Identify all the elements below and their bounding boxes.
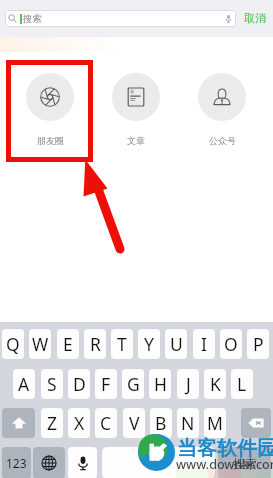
- staticText: B: [155, 411, 167, 435]
- button[interactable]: Space: [102, 447, 215, 478]
- staticText: A: [18, 372, 30, 396]
- staticText: V: [129, 411, 140, 435]
- button[interactable]: 取消: [240, 9, 270, 27]
- staticText: 公众号: [209, 135, 236, 146]
- button[interactable]: X: [68, 408, 90, 438]
- button[interactable]: V: [123, 408, 145, 438]
- staticText: W: [32, 332, 49, 356]
- staticText: H: [154, 372, 167, 396]
- button[interactable]: Switch language: [33, 447, 65, 478]
- staticText: 搜索: [233, 456, 257, 471]
- button[interactable]: 朋友圈: [26, 73, 74, 146]
- button[interactable]: O: [220, 329, 242, 359]
- button[interactable]: Delete: [241, 408, 271, 438]
- staticText: C: [100, 411, 112, 435]
- button[interactable]: 搜索: [218, 447, 271, 478]
- staticText: www.downkr.com: [176, 456, 273, 473]
- button[interactable]: 123: [2, 447, 31, 478]
- staticText: S: [47, 372, 57, 396]
- staticText: 123: [6, 455, 27, 471]
- button[interactable]: A: [13, 369, 35, 399]
- button[interactable]: R: [84, 329, 106, 359]
- button[interactable]: U: [165, 329, 187, 359]
- button[interactable]: 文章: [112, 73, 160, 146]
- staticText: J: [186, 372, 191, 396]
- staticText: P: [253, 332, 264, 356]
- button[interactable]: N: [177, 408, 199, 438]
- staticText: M: [207, 411, 223, 435]
- button[interactable]: L: [231, 369, 253, 399]
- button[interactable]: Y: [138, 329, 160, 359]
- staticText: I: [201, 332, 207, 356]
- button[interactable]: K: [204, 369, 226, 399]
- button[interactable]: H: [149, 369, 171, 399]
- staticText: 朋友圈: [37, 135, 64, 146]
- staticText: R: [90, 332, 101, 356]
- staticText: T: [117, 332, 127, 356]
- staticText: 搜索: [23, 13, 42, 25]
- button[interactable]: F: [95, 369, 117, 399]
- staticText: E: [63, 332, 73, 356]
- other: Voice search: [224, 14, 233, 23]
- button[interactable]: W: [29, 329, 51, 359]
- staticText: 取消: [244, 11, 266, 25]
- staticText: K: [210, 372, 221, 396]
- staticText: 文章: [127, 135, 145, 146]
- button[interactable]: M: [204, 408, 226, 438]
- staticText: L: [237, 372, 247, 396]
- staticText: Q: [6, 332, 20, 356]
- button[interactable]: Shift: [2, 408, 35, 438]
- button[interactable]: D: [68, 369, 90, 399]
- staticText: Y: [144, 332, 154, 356]
- button[interactable]: Z: [41, 408, 63, 438]
- button[interactable]: Voice input: [68, 447, 97, 478]
- staticText: G: [127, 372, 140, 396]
- staticText: X: [74, 411, 85, 435]
- staticText: D: [73, 372, 86, 396]
- button[interactable]: 搜索: [5, 10, 236, 27]
- staticText: U: [170, 332, 183, 356]
- staticText: Z: [47, 411, 58, 435]
- button[interactable]: J: [177, 369, 199, 399]
- staticText: 当客软件园: [177, 436, 273, 461]
- button[interactable]: B: [150, 408, 172, 438]
- button[interactable]: C: [95, 408, 117, 438]
- button[interactable]: 公众号: [198, 73, 246, 146]
- button[interactable]: Q: [2, 329, 24, 359]
- button[interactable]: E: [57, 329, 79, 359]
- button[interactable]: T: [111, 329, 133, 359]
- staticText: N: [181, 411, 195, 435]
- staticText: F: [101, 372, 111, 396]
- staticText: O: [224, 332, 238, 356]
- button[interactable]: P: [247, 329, 269, 359]
- button[interactable]: S: [41, 369, 63, 399]
- button[interactable]: I: [193, 329, 215, 359]
- button[interactable]: G: [122, 369, 144, 399]
